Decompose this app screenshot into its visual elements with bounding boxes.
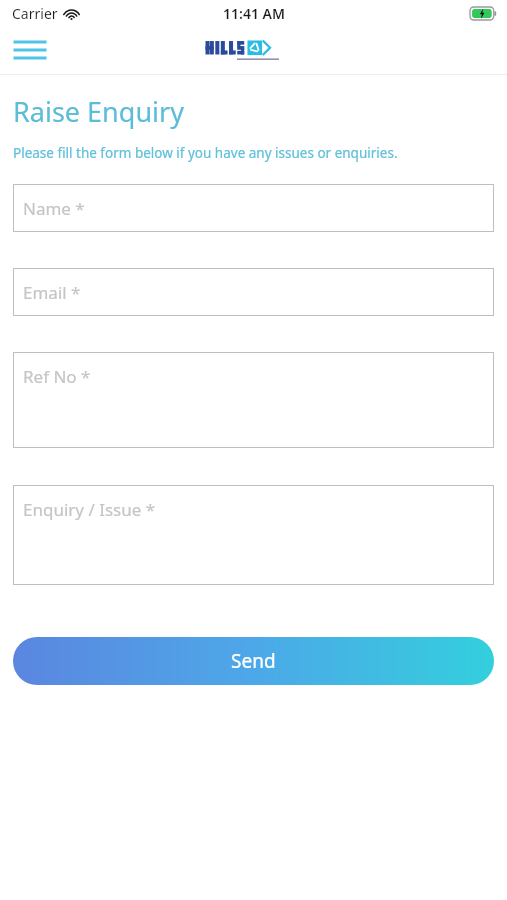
staticText: Carrier	[12, 4, 58, 23]
button[interactable]: Open navigation menu	[10, 30, 50, 70]
staticText: Send	[231, 648, 276, 674]
staticText: Email *	[23, 281, 81, 304]
other: Hills logo	[204, 36, 304, 64]
button[interactable]: Enquiry / Issue *	[13, 485, 494, 585]
button[interactable]: Email *	[13, 268, 494, 316]
staticText: Name *	[23, 197, 85, 220]
staticText: Ref No *	[23, 365, 91, 388]
button[interactable]: Send	[13, 637, 494, 685]
staticText: 11:41 AM	[223, 4, 285, 23]
staticText: Please fill the form below if you have a…	[13, 144, 398, 162]
staticText: Raise Enquiry	[13, 93, 184, 130]
button[interactable]: Ref No *	[13, 352, 494, 448]
button[interactable]: Name *	[13, 184, 494, 232]
staticText: Enquiry / Issue *	[23, 498, 156, 521]
